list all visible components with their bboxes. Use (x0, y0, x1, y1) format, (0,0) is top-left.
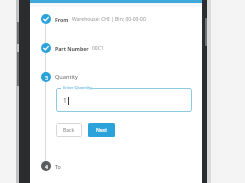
staticText: Part Number (55, 45, 89, 52)
staticText: Enter Quantity (63, 85, 92, 91)
button[interactable]: Next (88, 123, 115, 137)
staticText: Quantity (55, 73, 78, 81)
button[interactable] (56, 88, 192, 112)
button[interactable]: From (55, 14, 146, 24)
staticText: 00C1 (92, 45, 104, 52)
staticText: Back (63, 127, 75, 134)
button[interactable]: Back (56, 123, 82, 137)
staticText: 1 (63, 96, 67, 105)
staticText: Next (96, 127, 107, 134)
button[interactable]: To (55, 161, 61, 171)
staticText: To (55, 163, 61, 170)
other: Completed step (41, 14, 51, 24)
button[interactable]: Part Number (55, 43, 104, 53)
staticText: Warehouse: CHI | Bin: 00-00-00 (72, 16, 146, 23)
other: Completed step (41, 43, 51, 53)
staticText: 4 (45, 163, 48, 170)
staticText: 3 (45, 74, 48, 81)
staticText: From (55, 16, 69, 23)
button[interactable]: Quantity (55, 72, 78, 82)
